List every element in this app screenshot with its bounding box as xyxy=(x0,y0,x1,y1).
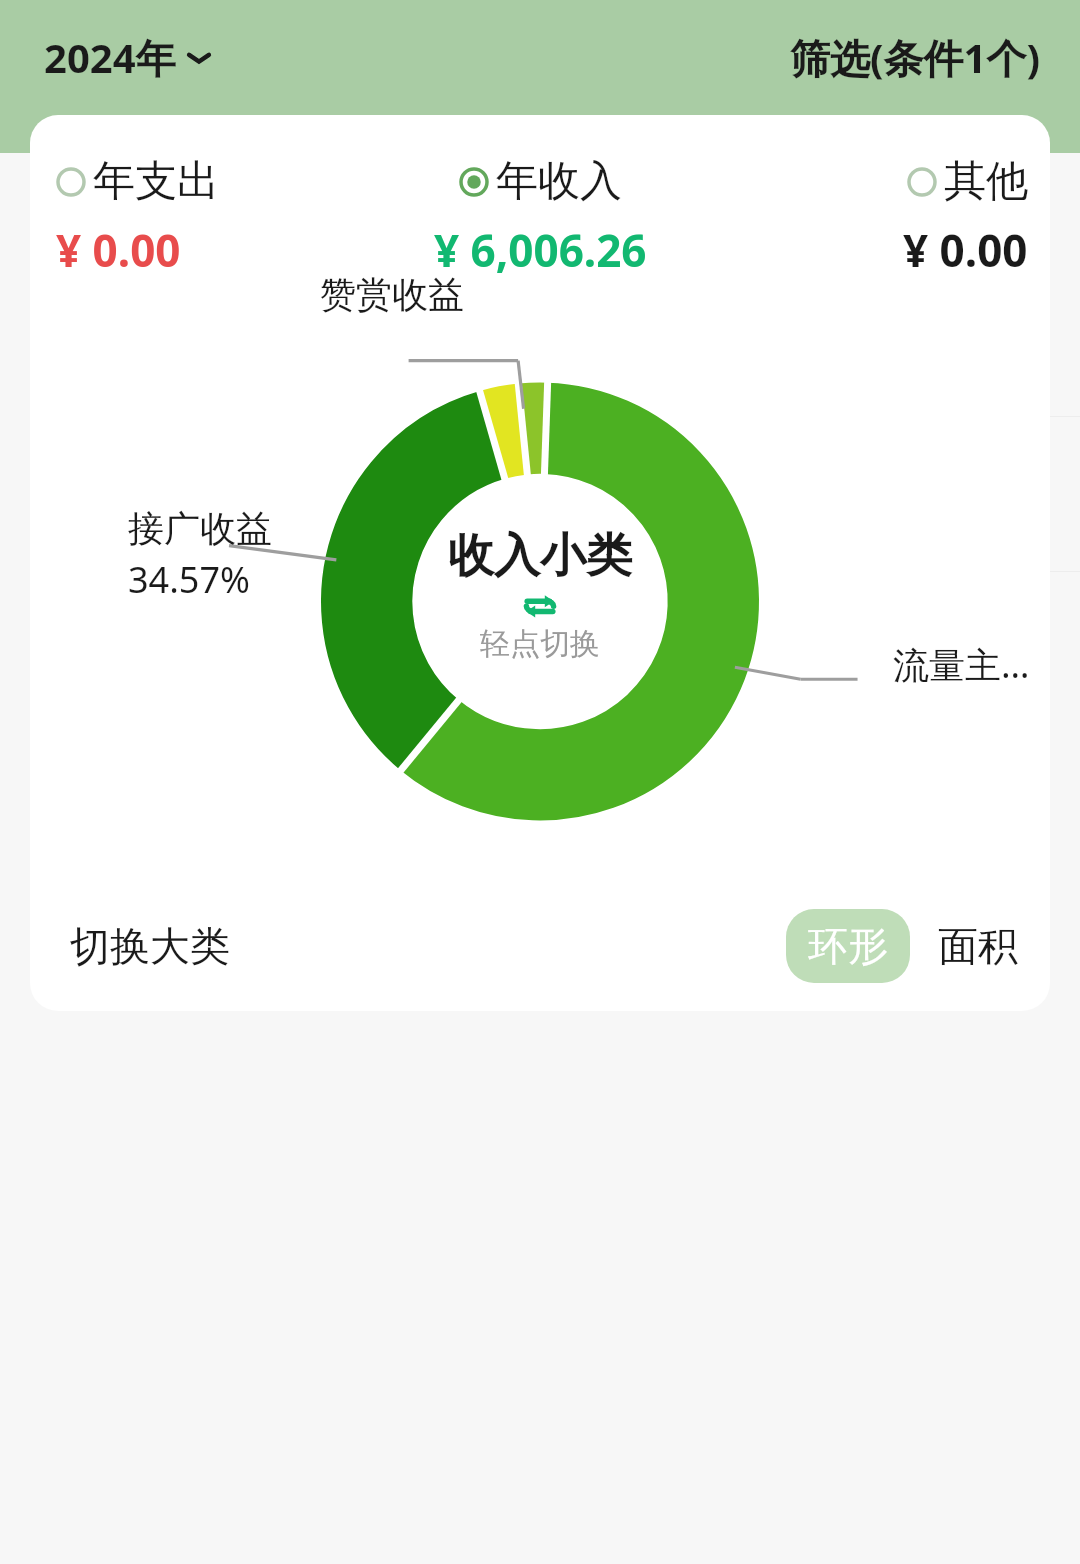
staticText: ¥ 6,006.26 xyxy=(347,188,530,240)
staticText: 赞赏收益 xyxy=(158,601,342,659)
button[interactable]: 2024年 xyxy=(40,24,216,91)
staticText: 赞赏收益 xyxy=(320,272,464,317)
button[interactable] xyxy=(30,284,1050,909)
button[interactable]: 接广收益 xyxy=(0,417,1080,572)
button[interactable]: 年收入 xyxy=(370,151,710,284)
staticText: 收入小类 xyxy=(448,527,632,585)
staticText: 流量主… xyxy=(893,640,1030,689)
button[interactable]: 面积 xyxy=(932,909,1024,983)
staticText: 接广收益 xyxy=(128,506,272,551)
staticText: 轻点切换 xyxy=(480,625,600,663)
staticText: 面积 xyxy=(938,921,1018,971)
staticText: 筛选(条件1个) xyxy=(790,30,1040,85)
staticText: 环形 xyxy=(808,921,888,971)
button[interactable]: 年支出 xyxy=(30,151,370,284)
staticText: 100.0% xyxy=(206,188,335,240)
staticText: 年支出 xyxy=(93,155,219,208)
button[interactable]: 环形 xyxy=(786,909,910,983)
staticText: 年收入 xyxy=(496,155,622,208)
staticText: 其他 xyxy=(944,155,1028,208)
button[interactable]: 其他 xyxy=(710,151,1050,284)
button[interactable]: 筛选(条件1个) xyxy=(784,24,1046,91)
staticText: 流量主收益 xyxy=(158,291,388,349)
staticText: 2024年 xyxy=(44,30,176,85)
staticText: 副业收益 xyxy=(42,190,194,238)
staticText: 34.57% xyxy=(128,555,250,604)
staticText: 2.86% xyxy=(352,605,465,659)
staticText: 切换大类 xyxy=(70,921,230,971)
button[interactable]: 切换大类 xyxy=(66,913,234,979)
staticText: 34.57% xyxy=(352,450,488,504)
staticText: ¥ 6,006.26 xyxy=(434,220,647,280)
staticText: ¥ 0.00 xyxy=(903,220,1028,280)
button[interactable]: 流量主收益 xyxy=(0,262,1080,417)
staticText: 9笔 xyxy=(989,663,1046,712)
staticText: ¥ 0.00 xyxy=(56,220,181,280)
button[interactable]: 赞赏收益 xyxy=(0,572,1080,726)
staticText: ¥ 172.00 xyxy=(863,586,1046,649)
staticText: 60.42% xyxy=(398,295,534,349)
